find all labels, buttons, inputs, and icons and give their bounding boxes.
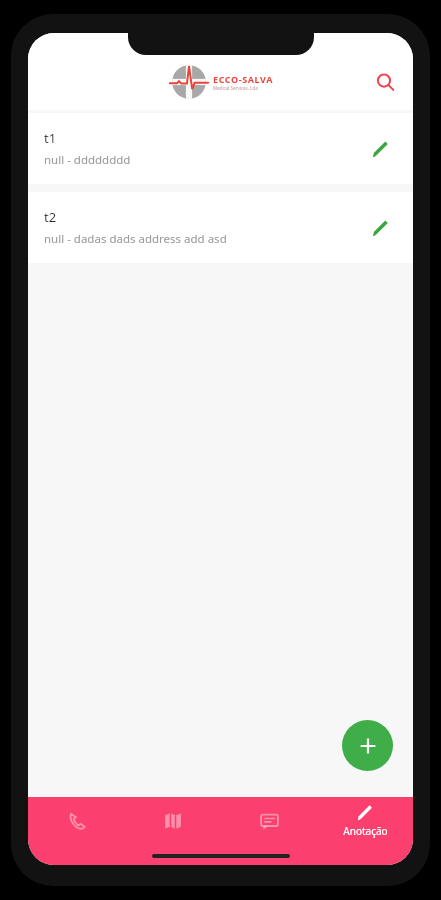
button[interactable]: Messages: [221, 797, 317, 845]
button[interactable]: Map: [125, 797, 221, 845]
staticText: t2: [44, 208, 57, 226]
staticText: null - dddddddd: [44, 152, 131, 168]
staticText: t1: [44, 129, 57, 147]
button[interactable]: Add: [342, 720, 393, 771]
staticText: ECCO-SALVA: [213, 73, 273, 85]
button[interactable]: Search: [365, 62, 405, 102]
button[interactable]: t2: [28, 192, 413, 263]
staticText: Medical Services, Lda: [213, 85, 258, 91]
button[interactable]: Anotação: [317, 797, 413, 845]
staticText: Anotação: [343, 824, 388, 838]
button[interactable]: Edit: [361, 208, 401, 248]
button[interactable]: Call: [28, 797, 125, 845]
button[interactable]: t1: [28, 113, 413, 184]
button[interactable]: Edit: [361, 129, 401, 169]
staticText: null - dadas dads address add asd: [44, 231, 227, 247]
